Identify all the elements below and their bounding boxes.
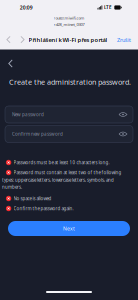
button[interactable]: Confirm new password — [5, 125, 133, 142]
button[interactable]: Back — [2, 33, 15, 47]
staticText: types: uppercase letters, lowercase lett… — [2, 177, 114, 183]
staticText: numbers. — [2, 184, 22, 190]
button[interactable]: Back — [2, 55, 18, 71]
button[interactable]: Zrušit — [114, 33, 134, 47]
staticText: New password — [12, 111, 44, 118]
staticText: 20:09 — [20, 4, 33, 11]
staticText: rd28_miinet_0307 — [53, 22, 84, 27]
button[interactable]: Next — [8, 221, 130, 236]
staticText: Passwords must be at least 10 characters… — [13, 159, 109, 165]
staticText: Password must contain at least two of th… — [13, 169, 121, 175]
staticText: No space is allowed — [13, 195, 51, 201]
staticText: Confirm the password again. — [13, 205, 73, 211]
button[interactable]: Forward — [16, 33, 29, 47]
staticText: LTE — [104, 4, 112, 11]
staticText: Přihlášení k Wi-Fi přes portál — [28, 36, 107, 44]
staticText: Create the administration password. — [9, 77, 131, 87]
staticText: Next — [63, 225, 75, 232]
staticText: router.miwifi.com — [53, 15, 84, 21]
staticText: Zrušit — [117, 36, 131, 44]
button[interactable]: New password — [5, 106, 133, 123]
staticText: Confirm new password — [12, 131, 63, 137]
